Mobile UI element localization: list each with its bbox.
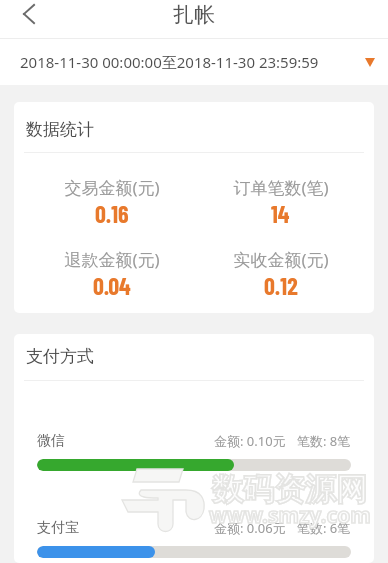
staticText: 2018-11-30 00:00:00至2018-11-30 23:59:59 (20, 52, 319, 72)
button[interactable]: Select date range (360, 52, 380, 72)
staticText: 金额: 0.10元 (214, 432, 286, 450)
staticText: 支付方式 (26, 346, 94, 367)
staticText: 数据统计 (26, 119, 94, 140)
button[interactable]: 微信 (37, 432, 351, 471)
staticText: 笔数: 6笔 (297, 519, 351, 537)
button[interactable]: Back (11, 0, 47, 32)
staticText: 数码资源网 (212, 470, 367, 509)
staticText: www.smzy.com (209, 501, 371, 530)
staticText: 扎帐 (173, 2, 215, 28)
staticText: 实收金额(元) (233, 248, 329, 271)
staticText: 支付宝 (37, 519, 79, 537)
staticText: 笔数: 8笔 (297, 432, 351, 450)
staticText: www.smzy.com (209, 501, 371, 530)
staticText: 数码资源网 (212, 470, 367, 509)
staticText: 0.12 (264, 271, 298, 300)
button[interactable]: 支付宝 (37, 519, 351, 558)
staticText: 14 (271, 199, 290, 228)
staticText: 0.04 (93, 271, 131, 300)
staticText: 0.16 (95, 199, 129, 228)
button[interactable]: 2018-11-30 00:00:00至2018-11-30 23:59:59 (0, 39, 388, 85)
staticText: 微信 (37, 432, 65, 450)
staticText: 金额: 0.06元 (214, 519, 286, 537)
staticText: 订单笔数(笔) (233, 176, 329, 199)
staticText: 退款金额(元) (64, 248, 160, 271)
staticText: 交易金额(元) (64, 176, 160, 199)
